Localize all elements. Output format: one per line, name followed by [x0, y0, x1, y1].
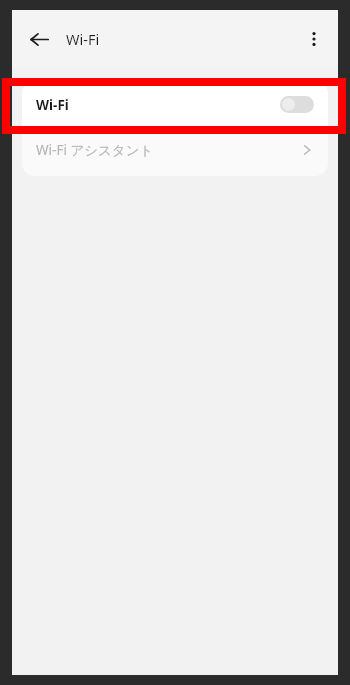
button[interactable]: Wi-Fi	[22, 81, 328, 128]
button[interactable]: Back	[22, 22, 56, 56]
button[interactable]: More options	[296, 21, 332, 57]
staticText: Wi-Fi	[36, 96, 69, 114]
button[interactable]: Wi-Fi アシスタント	[22, 128, 328, 171]
button[interactable]: Wi-Fi toggle	[280, 96, 314, 113]
staticText: Wi-Fi アシスタント	[36, 141, 154, 159]
staticText: Wi-Fi	[66, 29, 100, 49]
